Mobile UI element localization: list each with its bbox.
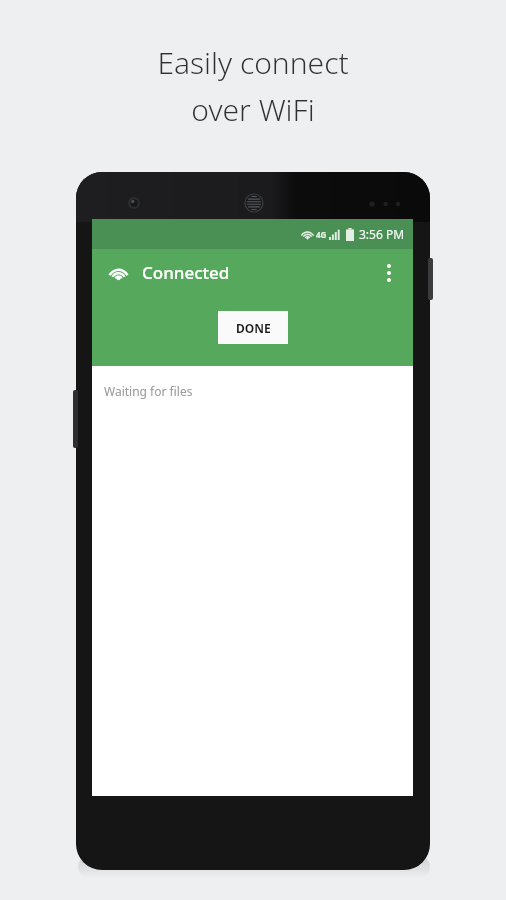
staticText: Waiting for files <box>104 383 193 399</box>
staticText: over WiFi <box>191 89 315 130</box>
staticText: Easily connect <box>157 42 349 83</box>
staticText: 3:56 PM <box>359 226 405 242</box>
staticText: 4G <box>316 229 327 240</box>
button[interactable]: Volume <box>73 390 78 448</box>
button[interactable]: More options <box>371 255 407 291</box>
button[interactable]: DONE <box>218 311 288 344</box>
staticText: DONE <box>236 320 271 336</box>
button[interactable]: Power <box>428 258 433 300</box>
button[interactable]: Wi-Fi connected <box>102 257 134 289</box>
staticText: Connected <box>142 261 230 284</box>
